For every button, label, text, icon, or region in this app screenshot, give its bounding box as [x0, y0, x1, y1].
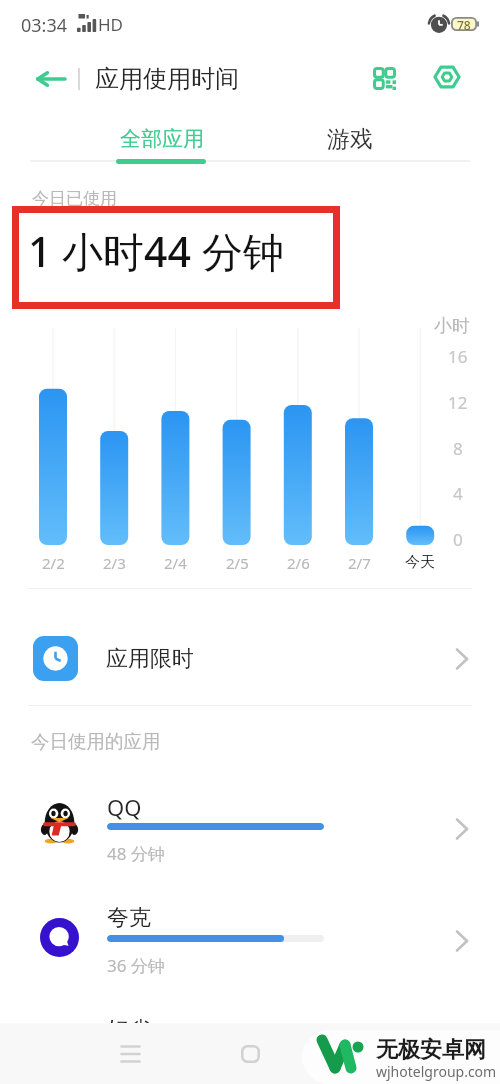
staticText: 2/6: [287, 553, 310, 573]
staticText: 2/7: [348, 553, 371, 573]
staticText: 8: [453, 437, 463, 460]
button[interactable]: 全部应用: [92, 118, 232, 160]
staticText: QQ: [107, 792, 142, 822]
staticText: 夸克: [107, 904, 151, 932]
staticText: 1 小时44 分钟: [28, 223, 284, 279]
staticText: 应用限时: [106, 645, 194, 673]
staticText: 12: [448, 391, 468, 414]
staticText: 今日已使用: [32, 188, 117, 209]
staticText: 小时: [434, 315, 470, 338]
staticText: 36 分钟: [107, 954, 165, 977]
staticText: 2/2: [42, 553, 65, 573]
staticText: 16: [448, 345, 468, 368]
button[interactable]: Scan QR code: [364, 58, 404, 98]
button[interactable]: 好省: [0, 996, 500, 1084]
button[interactable]: 应用限时: [0, 589, 500, 705]
staticText: 游戏: [327, 125, 373, 154]
staticText: 2/4: [164, 553, 187, 573]
button[interactable]: Settings: [427, 57, 467, 97]
button[interactable]: Recents: [102, 1023, 158, 1084]
staticText: 78: [457, 17, 471, 31]
staticText: 48 分钟: [107, 842, 165, 865]
button[interactable]: Home: [222, 1023, 278, 1084]
staticText: 应用使用时间: [95, 64, 239, 94]
staticText: 今日使用的应用: [31, 730, 161, 753]
staticText: 2/3: [103, 553, 126, 573]
button[interactable]: 游戏: [300, 118, 400, 160]
staticText: 好省: [107, 1016, 151, 1044]
staticText: 03:34: [21, 13, 68, 38]
button[interactable]: Back: [26, 59, 76, 99]
staticText: 0: [453, 528, 463, 551]
staticText: 无极安卓网: [376, 1036, 486, 1064]
staticText: 4: [453, 482, 463, 505]
staticText: HD: [98, 13, 124, 36]
staticText: wjhotelgroup.com: [376, 1062, 497, 1081]
button[interactable]: QQ: [0, 772, 500, 884]
staticText: 2/5: [226, 553, 249, 573]
staticText: 全部应用: [120, 126, 204, 152]
staticText: 今天: [405, 553, 435, 572]
button[interactable]: 夸克: [0, 884, 500, 996]
